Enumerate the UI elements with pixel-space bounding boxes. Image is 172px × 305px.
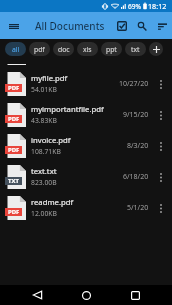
button[interactable]: doc	[53, 42, 74, 56]
staticText: ppt	[106, 45, 117, 54]
staticText: all	[12, 45, 20, 54]
button[interactable]: ppt	[101, 42, 122, 56]
button[interactable]: PDF	[0, 99, 172, 130]
staticText: 54.01KB	[31, 85, 57, 94]
staticText: 8/3/20	[127, 141, 149, 151]
staticText: 108.71KB	[31, 147, 61, 156]
staticText: readme.pdf	[31, 197, 74, 207]
staticText: doc	[58, 45, 70, 54]
staticText: 18:12	[148, 1, 167, 11]
staticText: 9/15/20	[123, 110, 149, 120]
button[interactable]: More options	[154, 201, 168, 215]
button[interactable]: txt	[125, 42, 146, 56]
staticText: PDF	[8, 146, 20, 154]
button[interactable]: Home	[74, 285, 98, 305]
staticText: 43.83KB	[31, 116, 57, 125]
button[interactable]: pdf	[29, 42, 50, 56]
staticText: PDF	[8, 84, 20, 92]
button[interactable]: Select all	[112, 16, 132, 36]
staticText: 10/27/20	[119, 79, 149, 89]
staticText: PDF	[8, 115, 20, 123]
button[interactable]: Sort	[152, 16, 172, 36]
staticText: txt	[131, 45, 140, 54]
staticText: xls	[83, 45, 92, 54]
staticText: 6/18/20	[123, 172, 149, 182]
button[interactable]: all	[5, 42, 26, 56]
staticText: 12.00KB	[31, 209, 57, 218]
button[interactable]: Add filter	[149, 42, 163, 56]
button[interactable]: Recents	[123, 285, 147, 305]
button[interactable]: Search	[132, 16, 152, 36]
staticText: TXT	[8, 177, 19, 185]
staticText: text.txt	[31, 166, 57, 176]
staticText: 69%	[128, 2, 142, 11]
button[interactable]: XLS	[0, 64, 172, 68]
button[interactable]: More options	[154, 77, 168, 91]
button[interactable]: More options	[154, 139, 168, 153]
button[interactable]: xls	[77, 42, 98, 56]
button[interactable]: TXT	[0, 161, 172, 192]
staticText: All Documents	[35, 19, 105, 33]
button[interactable]: PDF	[0, 68, 172, 99]
staticText: myimportantfile.pdf	[31, 104, 104, 114]
button[interactable]: Back	[25, 285, 49, 305]
staticText: 5/1/20	[127, 203, 149, 213]
staticText: myfile.pdf	[31, 73, 68, 83]
staticText: 823.00B	[31, 178, 57, 187]
staticText: invoice.pdf	[31, 135, 71, 145]
button[interactable]: PDF	[0, 192, 172, 223]
button[interactable]: Menu	[4, 16, 24, 36]
button[interactable]: More options	[154, 108, 168, 122]
staticText: pdf	[34, 45, 45, 54]
button[interactable]: PDF	[0, 130, 172, 161]
button[interactable]: More options	[154, 170, 168, 184]
staticText: PDF	[8, 208, 20, 216]
